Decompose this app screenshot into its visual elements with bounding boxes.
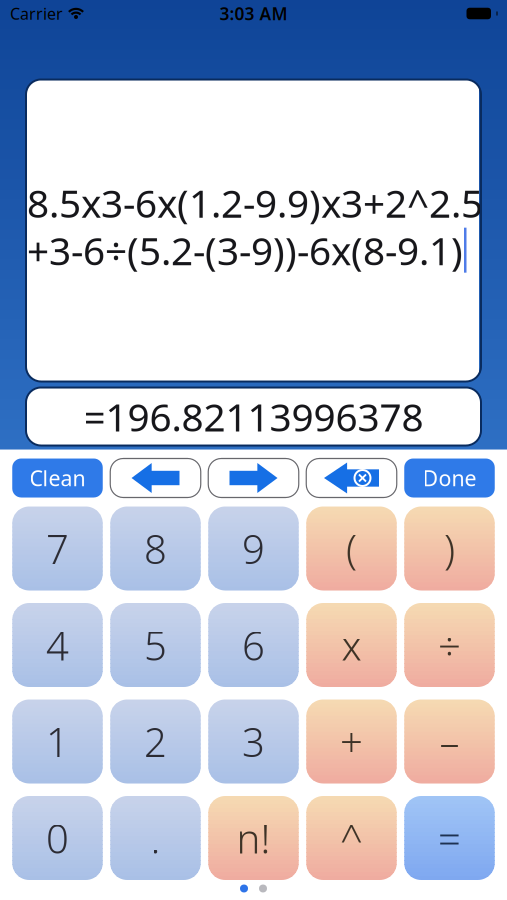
button[interactable]: ) (404, 506, 495, 590)
button[interactable] (110, 458, 201, 497)
button[interactable]: x (306, 603, 397, 687)
staticText: 9 (242, 522, 265, 575)
button[interactable]: . (110, 796, 201, 880)
staticText: +3-6÷(5.2-(3-9))-6x(8-9.1) (27, 224, 463, 276)
button[interactable]: 7 (12, 506, 103, 590)
button[interactable] (208, 458, 299, 497)
button[interactable]: ÷ (404, 603, 495, 687)
staticText: n! (236, 811, 270, 864)
button[interactable]: 9 (208, 506, 299, 590)
staticText: 6 (242, 618, 265, 671)
staticText: 2 (144, 715, 167, 768)
staticText: – (439, 715, 459, 768)
button[interactable]: ^ (306, 796, 397, 880)
staticText: . (150, 811, 160, 864)
button[interactable]: + (306, 699, 397, 783)
staticText: =196.82113996378 (83, 391, 423, 442)
staticText: = (438, 811, 461, 864)
button[interactable] (240, 884, 267, 892)
staticText: 8 (144, 522, 167, 575)
button[interactable]: 8 (110, 506, 201, 590)
staticText: 3:03 AM (219, 2, 287, 25)
staticText: x (341, 618, 361, 671)
staticText: 0 (46, 811, 69, 864)
button[interactable]: 3 (208, 699, 299, 783)
button[interactable]: 6 (208, 603, 299, 687)
button[interactable]: 1 (12, 699, 103, 783)
staticText: 4 (46, 618, 69, 671)
button[interactable]: 2 (110, 699, 201, 783)
staticText: ) (444, 522, 455, 575)
button[interactable]: ( (306, 506, 397, 590)
staticText: Carrier (10, 3, 63, 24)
staticText: ( (346, 522, 357, 575)
button[interactable]: Done (404, 458, 495, 497)
staticText: 1 (46, 715, 69, 768)
button[interactable]: 0 (12, 796, 103, 880)
button[interactable]: – (404, 699, 495, 783)
button[interactable]: = (404, 796, 495, 880)
staticText: Clean (29, 464, 85, 492)
button[interactable]: 5 (110, 603, 201, 687)
staticText: 5 (144, 618, 167, 671)
staticText: ^ (340, 811, 363, 864)
staticText: 8.5x3-6x(1.2-9.9)x3+2^2.5 (27, 177, 483, 228)
staticText: ÷ (438, 618, 461, 671)
staticText: Done (422, 464, 476, 492)
button[interactable]: n! (208, 796, 299, 880)
button[interactable]: Clean (12, 458, 103, 497)
staticText: + (340, 715, 363, 768)
button[interactable]: 4 (12, 603, 103, 687)
staticText: 7 (46, 522, 69, 575)
button[interactable] (306, 458, 397, 497)
staticText: 3 (242, 715, 265, 768)
